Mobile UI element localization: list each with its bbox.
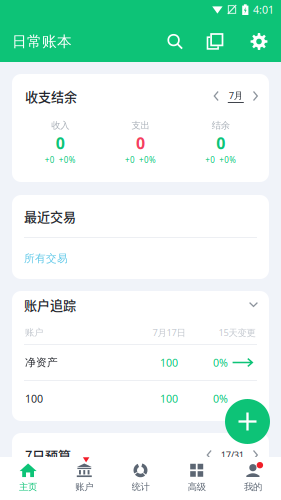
staticText: 0% bbox=[213, 391, 228, 406]
staticText: 最近交易 bbox=[24, 206, 76, 225]
staticText: 17/31 bbox=[221, 449, 244, 461]
staticText: 结余 bbox=[212, 120, 230, 131]
staticText: 0 bbox=[56, 132, 65, 154]
staticText: 账户 bbox=[25, 327, 43, 338]
staticText: 账户追踪 bbox=[24, 295, 76, 314]
staticText: 收入 bbox=[51, 120, 69, 131]
button[interactable]: Collapse bbox=[249, 302, 258, 307]
staticText: 统计 bbox=[131, 481, 149, 493]
staticText: 0% bbox=[213, 355, 228, 370]
staticText: 0 bbox=[136, 132, 145, 154]
staticText: 所有交易 bbox=[24, 252, 68, 265]
staticText: 100 bbox=[160, 391, 178, 406]
button[interactable]: 账户 bbox=[56, 457, 112, 500]
staticText: 4:01 bbox=[253, 2, 274, 17]
button[interactable]: 我的 bbox=[225, 457, 281, 500]
staticText: 我的 bbox=[244, 481, 262, 493]
staticText: +0 +0% bbox=[45, 155, 76, 165]
staticText: 7月17日 bbox=[152, 326, 185, 339]
button[interactable]: Ledgers bbox=[195, 20, 235, 63]
staticText: 7月 bbox=[229, 89, 243, 101]
staticText: 0 bbox=[216, 132, 225, 154]
button[interactable]: Settings bbox=[239, 20, 279, 63]
button[interactable]: 高级 bbox=[169, 457, 225, 500]
button[interactable]: Search bbox=[155, 20, 195, 63]
staticText: 日常账本 bbox=[12, 32, 72, 50]
staticText: 收支结余 bbox=[25, 86, 77, 105]
staticText: +0 +0% bbox=[205, 155, 236, 165]
staticText: 7日预算 bbox=[25, 445, 71, 464]
button[interactable]: 所有交易 bbox=[24, 238, 68, 279]
staticText: 支出 bbox=[131, 120, 149, 131]
staticText: 净资产 bbox=[25, 356, 58, 369]
button[interactable]: 7月 bbox=[214, 89, 258, 103]
staticText: 高级 bbox=[188, 481, 206, 493]
staticText: 主页 bbox=[19, 481, 37, 493]
staticText: 15天变更 bbox=[218, 326, 255, 339]
staticText: +0 +0% bbox=[125, 155, 156, 165]
button[interactable]: 统计 bbox=[112, 457, 169, 500]
staticText: 账户 bbox=[75, 481, 93, 493]
staticText: 100 bbox=[160, 355, 178, 370]
button[interactable]: Day range bbox=[207, 449, 258, 461]
button[interactable]: 主页 bbox=[0, 457, 56, 500]
button[interactable]: Add transaction bbox=[225, 399, 270, 444]
staticText: 100 bbox=[25, 391, 43, 406]
